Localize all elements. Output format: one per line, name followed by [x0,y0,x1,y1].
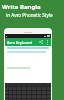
staticText: in Avro Phonetic Style [6,12,53,18]
staticText: Avro Keyboard [7,40,33,45]
staticText: Write Bangla [2,3,41,11]
button[interactable]: Share [38,39,44,45]
button[interactable]: More options [44,39,50,45]
